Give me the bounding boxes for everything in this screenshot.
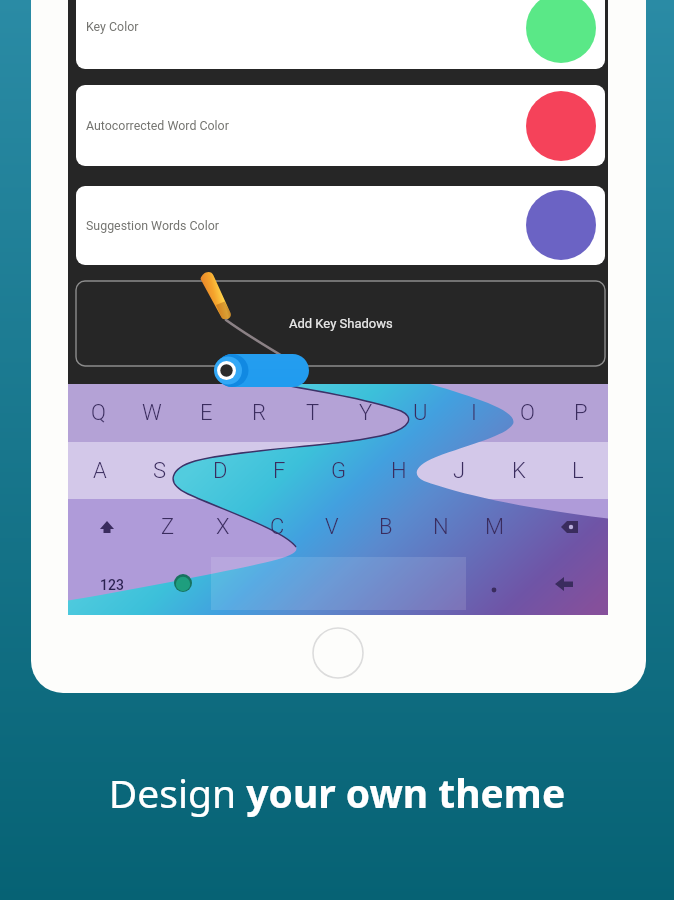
staticText: E [200, 400, 213, 426]
button[interactable]: T [286, 384, 340, 442]
staticText: G [331, 458, 347, 484]
staticText: T [306, 400, 320, 426]
staticText: P [574, 400, 588, 426]
staticText: Z [161, 514, 175, 540]
button[interactable]: W [125, 384, 179, 442]
staticText: O [520, 400, 535, 426]
button[interactable]: Shift [95, 499, 149, 555]
button[interactable]: D [190, 442, 250, 499]
button[interactable]: Y [339, 384, 393, 442]
staticText: Autocorrected Word Color [86, 118, 229, 133]
staticText: B [379, 514, 393, 540]
button[interactable]: Key Color [76, 0, 605, 69]
button[interactable]: R [232, 384, 286, 442]
button[interactable]: C [250, 499, 304, 555]
staticText: J [453, 458, 466, 484]
staticText: Suggestion Words Color [86, 218, 219, 233]
staticText: S [153, 458, 167, 484]
staticText: C [270, 514, 285, 540]
staticText: R [252, 400, 266, 426]
staticText: F [273, 458, 286, 484]
staticText: Q [91, 400, 106, 426]
staticText: L [572, 458, 584, 484]
staticText: Design your own theme [0, 766, 674, 819]
staticText: D [213, 458, 228, 484]
staticText: Y [359, 400, 373, 426]
button[interactable]: Z [141, 499, 195, 555]
button[interactable]: S [130, 442, 190, 499]
button[interactable]: X [196, 499, 250, 555]
button[interactable]: B [359, 499, 413, 555]
button[interactable]: Emoji [156, 555, 210, 615]
button[interactable]: P [554, 384, 608, 442]
button[interactable]: Backspace [543, 499, 608, 555]
button[interactable]: I [447, 384, 501, 442]
button[interactable]: V [305, 499, 359, 555]
staticText: X [216, 514, 230, 540]
staticText: W [142, 400, 162, 426]
button[interactable]: L [548, 442, 608, 499]
staticText: M [485, 514, 505, 540]
staticText: I [471, 400, 477, 426]
button[interactable]: Period [470, 555, 518, 615]
staticText: U [413, 400, 428, 426]
button[interactable]: Space [212, 555, 470, 615]
button[interactable]: Suggestion Words Color [76, 186, 605, 265]
button[interactable]: Enter [530, 555, 608, 615]
button[interactable]: F [249, 442, 309, 499]
staticText: H [391, 458, 407, 484]
staticText: N [433, 514, 449, 540]
staticText: A [93, 458, 107, 484]
button[interactable]: 123 [68, 555, 156, 615]
button[interactable]: G [309, 442, 369, 499]
staticText: Add Key Shadows [289, 316, 393, 331]
button[interactable]: O [500, 384, 554, 442]
button[interactable]: A [70, 442, 130, 499]
button[interactable]: U [393, 384, 447, 442]
button[interactable]: M [468, 499, 522, 555]
staticText: K [512, 458, 526, 484]
button[interactable]: Autocorrected Word Color [76, 85, 605, 166]
button[interactable]: J [429, 442, 489, 499]
button[interactable]: Add Key Shadows [76, 281, 605, 366]
button[interactable]: Q [71, 384, 125, 442]
button[interactable]: H [369, 442, 429, 499]
button[interactable]: E [179, 384, 233, 442]
staticText: 123 [100, 577, 124, 593]
staticText: V [325, 514, 339, 540]
button[interactable]: K [489, 442, 549, 499]
staticText: Key Color [86, 19, 139, 34]
button[interactable]: N [414, 499, 468, 555]
